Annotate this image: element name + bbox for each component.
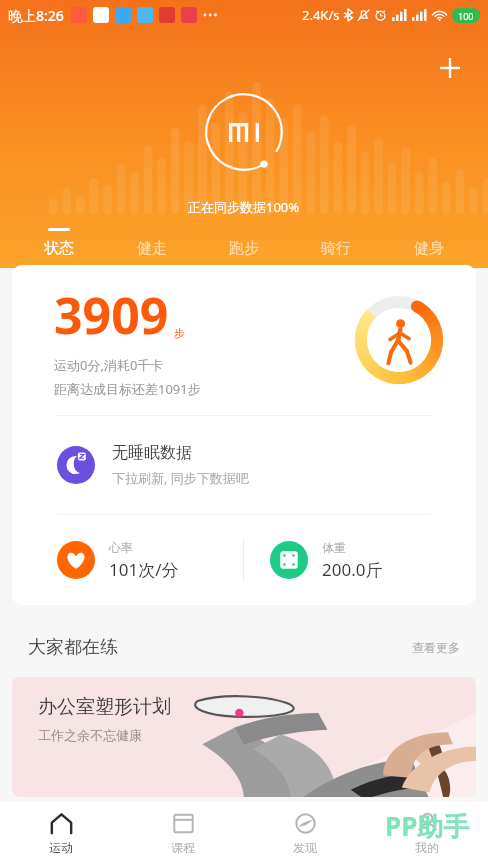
staticText: 100 bbox=[458, 10, 474, 22]
staticText: 运动0分,消耗0千卡 bbox=[54, 356, 164, 374]
button[interactable]: Add device bbox=[426, 44, 474, 92]
staticText: 工作之余不忘健康 bbox=[38, 727, 142, 743]
staticText: 课程 bbox=[171, 840, 195, 855]
staticText: 骑行 bbox=[321, 239, 351, 258]
staticText: 正在同步数据100% bbox=[188, 198, 300, 216]
staticText: 我的 bbox=[415, 840, 439, 855]
button[interactable]: Mi band sync bbox=[204, 92, 284, 172]
button[interactable]: 健走 bbox=[119, 226, 185, 260]
staticText: 下拉刷新, 同步下数据吧 bbox=[112, 469, 249, 487]
button[interactable]: 课程 bbox=[122, 802, 244, 866]
staticText: 发现 bbox=[293, 840, 317, 855]
staticText: 查看更多 bbox=[412, 640, 460, 655]
button[interactable]: 查看更多 bbox=[412, 640, 460, 655]
staticText: 200.0斤 bbox=[322, 558, 383, 581]
staticText: 晚上8:26 bbox=[8, 6, 64, 25]
button[interactable]: 骑行 bbox=[303, 226, 369, 260]
button[interactable]: 发现 bbox=[244, 802, 366, 866]
staticText: 大家都在练 bbox=[28, 636, 118, 659]
button[interactable]: 状态 bbox=[26, 226, 92, 260]
button[interactable]: 心率 bbox=[12, 515, 243, 605]
button[interactable]: 运动 bbox=[0, 802, 122, 866]
staticText: 运动 bbox=[49, 840, 73, 855]
staticText: 无睡眠数据 bbox=[112, 443, 192, 463]
staticText: 2.4K/s bbox=[302, 6, 340, 24]
button[interactable]: 我的 bbox=[366, 802, 488, 866]
staticText: 距离达成目标还差1091步 bbox=[54, 380, 201, 398]
button[interactable]: 3909 bbox=[12, 265, 476, 415]
staticText: 101次/分 bbox=[109, 558, 179, 581]
button[interactable]: 办公室塑形计划 bbox=[12, 677, 476, 797]
button[interactable]: 无睡眠数据 bbox=[12, 416, 476, 514]
staticText: 3909 bbox=[54, 281, 169, 349]
staticText: 状态 bbox=[44, 239, 74, 258]
staticText: PP助手 bbox=[385, 808, 470, 844]
button[interactable]: 健身 bbox=[396, 226, 462, 260]
staticText: 体重 bbox=[322, 540, 346, 555]
button[interactable]: 体重 bbox=[244, 515, 476, 605]
staticText: 步 bbox=[174, 326, 185, 340]
staticText: 健走 bbox=[137, 239, 167, 258]
button[interactable]: 跑步 bbox=[211, 226, 277, 260]
staticText: 跑步 bbox=[229, 239, 259, 258]
staticText: 办公室塑形计划 bbox=[38, 695, 171, 719]
staticText: 健身 bbox=[414, 239, 444, 258]
staticText: 心率 bbox=[109, 540, 133, 555]
